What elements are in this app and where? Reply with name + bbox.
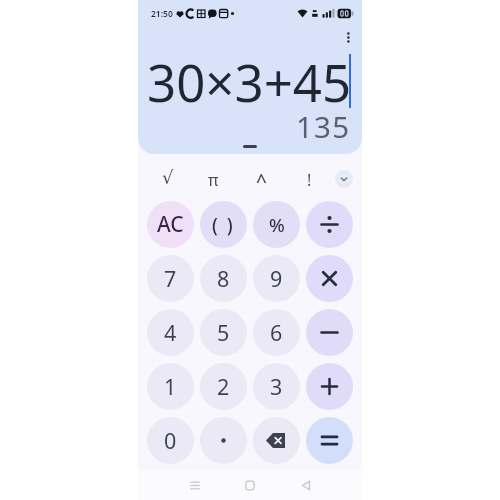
button[interactable]: 3 [253,363,300,410]
button[interactable] [343,29,353,45]
button[interactable]: π [208,169,219,191]
button[interactable]: 4 [147,309,194,356]
button[interactable]: 5 [200,309,247,356]
button[interactable]: 2 [200,363,247,410]
button[interactable]: ! [307,169,312,191]
button[interactable] [306,417,353,464]
staticText: 3 [270,372,283,401]
button[interactable] [306,309,353,356]
staticText: 4 [164,318,177,347]
staticText: ( ) [212,212,235,238]
staticText: 1 [164,372,177,401]
staticText: % [269,212,285,237]
staticText: 0 [164,426,177,455]
staticText: AC [157,210,184,239]
button[interactable] [306,363,353,410]
button[interactable]: √ [162,167,174,188]
staticText: 6 [270,318,283,347]
button[interactable]: AC [147,201,194,248]
button[interactable]: % [253,201,300,248]
button[interactable] [306,255,353,302]
button[interactable] [306,201,353,248]
staticText: 135 [296,106,351,146]
button[interactable]: 1 [147,363,194,410]
staticText: 9 [270,264,283,293]
staticText: 5 [217,318,230,347]
button[interactable] [253,417,300,464]
button[interactable]: 7 [147,255,194,302]
button[interactable]: 9 [253,255,300,302]
button[interactable] [200,417,247,464]
button[interactable]: 6 [253,309,300,356]
button[interactable] [335,170,353,188]
staticText: 2 [217,372,230,401]
staticText: 21:50 [151,8,173,20]
staticText: 8 [217,264,230,293]
staticText: 7 [164,264,177,293]
button[interactable]: ( ) [200,201,247,248]
button[interactable]: 0 [147,417,194,464]
button[interactable]: ^ [256,168,267,194]
button[interactable]: 8 [200,255,247,302]
staticText: 30×3+45 [147,47,352,116]
